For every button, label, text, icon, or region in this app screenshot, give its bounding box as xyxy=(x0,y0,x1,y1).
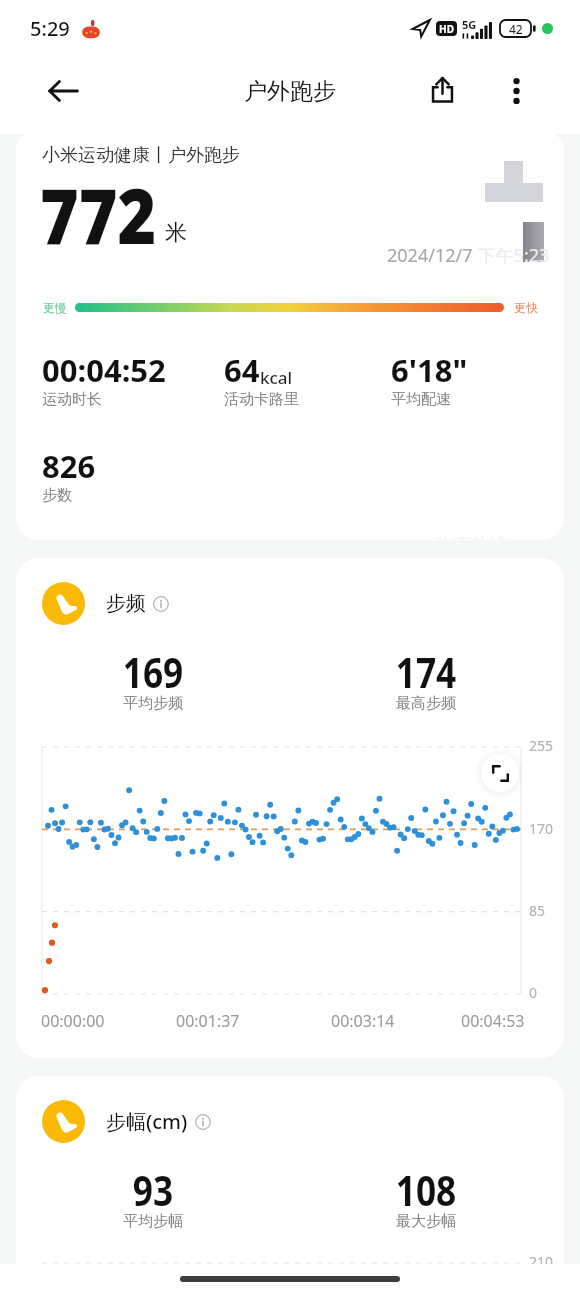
staticText: 5G xyxy=(462,17,477,32)
staticText: 255 xyxy=(529,736,554,755)
button[interactable]: 64 xyxy=(224,349,394,411)
staticText: 85 xyxy=(529,901,546,920)
staticText: 00:04:53 xyxy=(461,1010,525,1032)
button[interactable]: 174 xyxy=(336,644,516,700)
staticText: 00:01:37 xyxy=(176,1010,240,1032)
staticText: 826 xyxy=(42,445,96,487)
staticText: 00:04:52 xyxy=(42,349,166,391)
button[interactable]: 00:04:52 xyxy=(42,349,212,411)
staticText: 108 xyxy=(349,1162,503,1218)
button[interactable]: 步幅(cm) xyxy=(42,1100,211,1143)
staticText: 动态轨迹 xyxy=(433,533,509,540)
button[interactable]: 步频 xyxy=(42,582,169,625)
staticText: 最高步频 xyxy=(336,694,516,713)
staticText: 最大步幅 xyxy=(336,1212,516,1231)
staticText: 活动卡路里 xyxy=(224,390,299,409)
staticText: 步频 xyxy=(106,591,146,616)
staticText: 步数 xyxy=(42,486,72,505)
button[interactable]: Back xyxy=(42,70,84,112)
staticText: 平均步频 xyxy=(63,694,243,713)
staticText: 5:29 xyxy=(30,15,70,42)
button[interactable]: 动态轨迹 xyxy=(410,533,509,540)
staticText: 0 xyxy=(529,983,538,1002)
staticText: 米 xyxy=(165,219,187,247)
staticText: 93 xyxy=(76,1162,230,1218)
staticText: 772 xyxy=(40,162,157,267)
staticText: 2024/12/7 xyxy=(387,243,473,268)
button[interactable]: 169 xyxy=(63,644,243,700)
staticText: kcal xyxy=(260,366,293,389)
button[interactable]: 户外跑步 xyxy=(232,72,348,110)
staticText: 下午5:23 xyxy=(473,243,550,268)
staticText: 170 xyxy=(529,819,554,838)
staticText: 174 xyxy=(349,644,503,700)
staticText: 00:03:14 xyxy=(331,1010,395,1032)
staticText: 运动时长 xyxy=(42,390,102,409)
staticText: 平均配速 xyxy=(391,390,451,409)
button[interactable]: 6'18" xyxy=(391,349,561,411)
staticText: 42 xyxy=(509,21,523,37)
staticText: 户外跑步 xyxy=(244,77,336,106)
button[interactable]: 108 xyxy=(336,1162,516,1218)
staticText: 更慢 xyxy=(43,300,67,315)
button[interactable]: 93 xyxy=(63,1162,243,1218)
staticText: 169 xyxy=(76,644,230,700)
staticText: 6'18" xyxy=(391,349,468,391)
staticText: HD xyxy=(439,22,454,36)
staticText: 更快 xyxy=(514,300,538,315)
button[interactable]: More options xyxy=(494,69,538,113)
button[interactable]: 826 xyxy=(42,445,212,507)
staticText: 210 xyxy=(529,1252,554,1271)
button[interactable]: Share xyxy=(420,67,464,111)
staticText: 步幅(cm) xyxy=(106,1108,188,1135)
staticText: 64 xyxy=(224,349,260,391)
button[interactable]: Expand chart xyxy=(481,754,519,792)
staticText: 平均步幅 xyxy=(63,1212,243,1231)
staticText: 小米运动健康丨户外跑步 xyxy=(42,144,240,167)
staticText: 00:00:00 xyxy=(41,1010,105,1032)
